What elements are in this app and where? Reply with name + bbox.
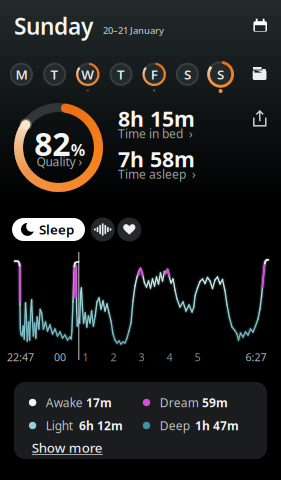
staticText: 1h 47m	[195, 417, 239, 433]
staticText: Time asleep ›	[118, 166, 196, 182]
staticText: F	[151, 65, 158, 83]
staticText: 2	[110, 350, 116, 364]
staticText: 4	[166, 350, 172, 364]
staticText: S	[217, 65, 224, 83]
staticText: S	[184, 65, 191, 83]
staticText: 22:47	[7, 350, 34, 364]
staticText: 5	[194, 350, 200, 364]
staticText: 00	[54, 350, 66, 364]
staticText: 6:27	[245, 350, 266, 364]
staticText: 20–21 January	[103, 24, 164, 37]
staticText: T	[117, 65, 125, 83]
staticText: Quality ›	[36, 153, 82, 169]
staticText: 17m	[86, 394, 112, 410]
staticText: 59m	[202, 394, 228, 410]
staticText: 8h 15m	[118, 104, 195, 133]
staticText: Light	[46, 417, 73, 433]
staticText: Awake	[46, 394, 83, 410]
staticText: T	[51, 65, 59, 83]
staticText: Sunday	[14, 11, 93, 41]
staticText: W	[81, 65, 94, 83]
staticText: Time in bed ›	[118, 125, 193, 141]
staticText: M	[15, 65, 27, 83]
staticText: 3	[138, 350, 144, 364]
staticText: Sleep	[39, 220, 74, 238]
staticText: 6h 12m	[79, 417, 123, 433]
staticText: 1	[82, 350, 88, 364]
staticText: 7h 58m	[118, 145, 195, 173]
staticText: Dream	[160, 394, 199, 410]
staticText: Show more	[32, 439, 103, 456]
staticText: %	[71, 139, 85, 160]
staticText: Deep	[160, 417, 190, 433]
staticText: 82	[34, 122, 70, 165]
